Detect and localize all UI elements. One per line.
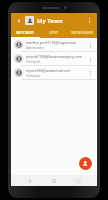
staticText: PARTICIPANTS: [16, 31, 34, 35]
button[interactable]: EXPERT: [39, 28, 68, 37]
button[interactable]: Add member: [79, 157, 92, 170]
staticText: pineda7036@fastmessaging.com: [26, 54, 82, 59]
button[interactable]: myers933@wearemail.net: [11, 66, 97, 79]
button[interactable]: PARTICIPANTS: [11, 28, 39, 37]
button[interactable]: Item options: [86, 55, 94, 63]
button[interactable]: Home: [49, 176, 59, 186]
button[interactable]: Item options: [86, 69, 94, 77]
staticText: Administrator: [26, 46, 45, 50]
button[interactable]: Back: [14, 16, 23, 25]
button[interactable]: Recent apps: [73, 176, 83, 186]
button[interactable]: More options: [85, 16, 94, 25]
staticText: My Team: [37, 17, 85, 25]
button[interactable]: pineda7036@fastmessaging.com: [11, 52, 97, 65]
button[interactable]: Item options: [86, 41, 94, 49]
staticText: INVITED/MEMBER: [71, 31, 94, 35]
staticText: martha_prof1116@mgsa.com: [26, 40, 77, 45]
staticText: Participant: [26, 74, 41, 78]
button[interactable]: INVITED/MEMBER: [68, 28, 97, 37]
button[interactable]: Back: [25, 176, 35, 186]
button[interactable]: martha_prof1116@mgsa.com: [11, 38, 97, 51]
staticText: EXPERT: [49, 31, 59, 35]
staticText: Participant: [26, 60, 41, 64]
staticText: myers933@wearemail.net: [26, 68, 70, 73]
